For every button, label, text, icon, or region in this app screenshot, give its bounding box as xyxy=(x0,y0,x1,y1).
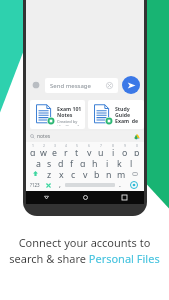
button[interactable]: Backspace xyxy=(127,169,143,178)
staticText: i xyxy=(112,147,115,156)
staticText: w xyxy=(40,147,47,156)
staticText: j xyxy=(106,158,109,167)
staticText: l xyxy=(130,158,133,167)
button[interactable]: g xyxy=(77,158,89,167)
button[interactable]: notes xyxy=(26,131,144,142)
staticText: , xyxy=(59,180,61,190)
button[interactable]: , xyxy=(55,180,65,190)
button[interactable]: y xyxy=(83,147,95,156)
staticText: 5 xyxy=(76,143,78,147)
button[interactable]: v xyxy=(79,169,91,178)
button[interactable]: a xyxy=(33,158,44,167)
staticText: c xyxy=(71,169,76,178)
staticText: 8 xyxy=(112,143,114,147)
button[interactable]: . xyxy=(115,180,125,190)
staticText: t xyxy=(75,147,79,156)
staticText: y xyxy=(87,147,92,156)
staticText: x xyxy=(59,169,64,178)
staticText: v xyxy=(83,169,88,178)
staticText: p xyxy=(134,147,140,156)
button[interactable]: x xyxy=(55,169,67,178)
staticText: g xyxy=(80,158,86,167)
button[interactable]: k xyxy=(113,158,125,167)
button[interactable]: f xyxy=(66,158,77,167)
button[interactable]: b xyxy=(91,169,103,178)
button[interactable]: h xyxy=(89,158,101,167)
staticText: r xyxy=(64,147,68,156)
button[interactable]: s xyxy=(44,158,55,167)
staticText: 1 xyxy=(32,143,34,147)
button[interactable]: w xyxy=(38,147,49,156)
staticText: s xyxy=(47,158,52,167)
staticText: Connect your accounts to search & share … xyxy=(9,235,160,266)
button[interactable]: l xyxy=(125,158,137,167)
staticText: e xyxy=(52,147,57,156)
button[interactable]: Close xyxy=(42,180,55,190)
staticText: f xyxy=(70,158,74,167)
button[interactable]: q xyxy=(27,147,38,156)
staticText: 2 xyxy=(43,143,45,147)
staticText: Study Guide Exam de xyxy=(115,105,141,124)
staticText: . xyxy=(119,180,121,190)
staticText: 0 xyxy=(136,143,138,147)
staticText: n xyxy=(106,169,112,178)
staticText: 4 xyxy=(65,143,67,147)
button[interactable]: o xyxy=(119,147,131,156)
staticText: 9 xyxy=(124,143,126,147)
button[interactable]: Attach xyxy=(30,79,42,91)
staticText: 6 xyxy=(88,143,90,147)
staticText: jdoe@gmail.com xyxy=(57,124,82,126)
staticText: notes xyxy=(37,133,51,140)
button[interactable]: Send xyxy=(122,76,140,94)
button[interactable]: Send message xyxy=(45,78,118,93)
button[interactable]: p xyxy=(131,147,143,156)
button[interactable]: Home xyxy=(66,191,105,204)
button[interactable]: Exam 101 Notes xyxy=(30,100,85,129)
button[interactable]: r xyxy=(60,147,71,156)
staticText: ?123 xyxy=(30,182,40,188)
button[interactable]: m xyxy=(115,169,127,178)
staticText: o xyxy=(122,147,128,156)
button[interactable]: n xyxy=(103,169,115,178)
other: Drive xyxy=(134,134,140,140)
button[interactable]: u xyxy=(95,147,107,156)
staticText: Send message xyxy=(50,82,91,90)
staticText: h xyxy=(92,158,98,167)
button[interactable]: Recents xyxy=(105,191,144,204)
button[interactable]: j xyxy=(101,158,113,167)
button[interactable]: e xyxy=(49,147,60,156)
staticText: d xyxy=(58,158,64,167)
staticText: m xyxy=(117,169,126,178)
staticText: Exam 101 Notes xyxy=(57,105,82,118)
staticText: 7 xyxy=(100,143,102,147)
staticText: q xyxy=(30,147,36,156)
staticText: u xyxy=(98,147,104,156)
staticText: a xyxy=(36,158,41,167)
button[interactable]: t xyxy=(71,147,83,156)
staticText: Created by xyxy=(57,119,78,124)
button[interactable]: Shift xyxy=(27,169,43,178)
staticText: z xyxy=(47,169,52,178)
button[interactable]: z xyxy=(43,169,55,178)
staticText: k xyxy=(117,158,122,167)
button[interactable]: d xyxy=(55,158,66,167)
button[interactable]: Voice input xyxy=(125,180,143,190)
button[interactable]: i xyxy=(107,147,119,156)
button[interactable]: ?123 xyxy=(27,180,42,190)
staticText: 3 xyxy=(54,143,56,147)
button[interactable]: Study Guide Exam de xyxy=(88,100,144,129)
button[interactable]: Back xyxy=(26,191,66,204)
button[interactable]: c xyxy=(67,169,79,178)
staticText: b xyxy=(94,169,100,178)
